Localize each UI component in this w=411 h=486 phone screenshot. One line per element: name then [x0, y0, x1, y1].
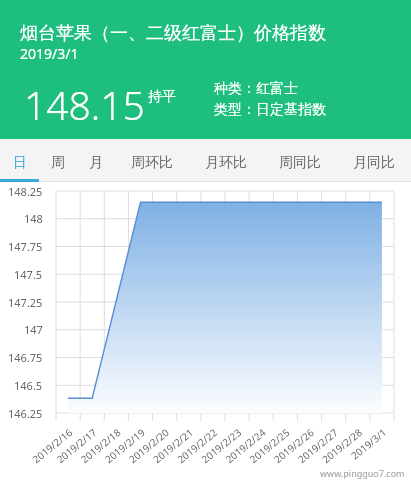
button[interactable]: 月同比: [337, 139, 411, 182]
staticText: 烟台苹果（一、二级红富士）价格指数: [20, 22, 326, 45]
staticText: 日: [13, 154, 27, 172]
staticText: 类型：日定基指数: [214, 101, 326, 119]
button[interactable]: 周: [39, 139, 77, 182]
staticText: 种类：红富士: [214, 80, 298, 98]
button[interactable]: 日: [0, 139, 39, 182]
staticText: 周: [51, 154, 65, 172]
staticText: 持平: [148, 88, 176, 106]
button[interactable]: 周同比: [263, 139, 337, 182]
staticText: 2019/3/1: [20, 44, 79, 63]
staticText: 周环比: [131, 154, 173, 172]
staticText: 月: [89, 154, 103, 172]
staticText: 月同比: [353, 154, 395, 172]
button[interactable]: 月: [77, 139, 115, 182]
staticText: 月环比: [205, 154, 247, 172]
button[interactable]: 月环比: [189, 139, 263, 182]
staticText: 周同比: [279, 154, 321, 172]
staticText: 148.15: [24, 78, 145, 131]
button[interactable]: 周环比: [115, 139, 189, 182]
